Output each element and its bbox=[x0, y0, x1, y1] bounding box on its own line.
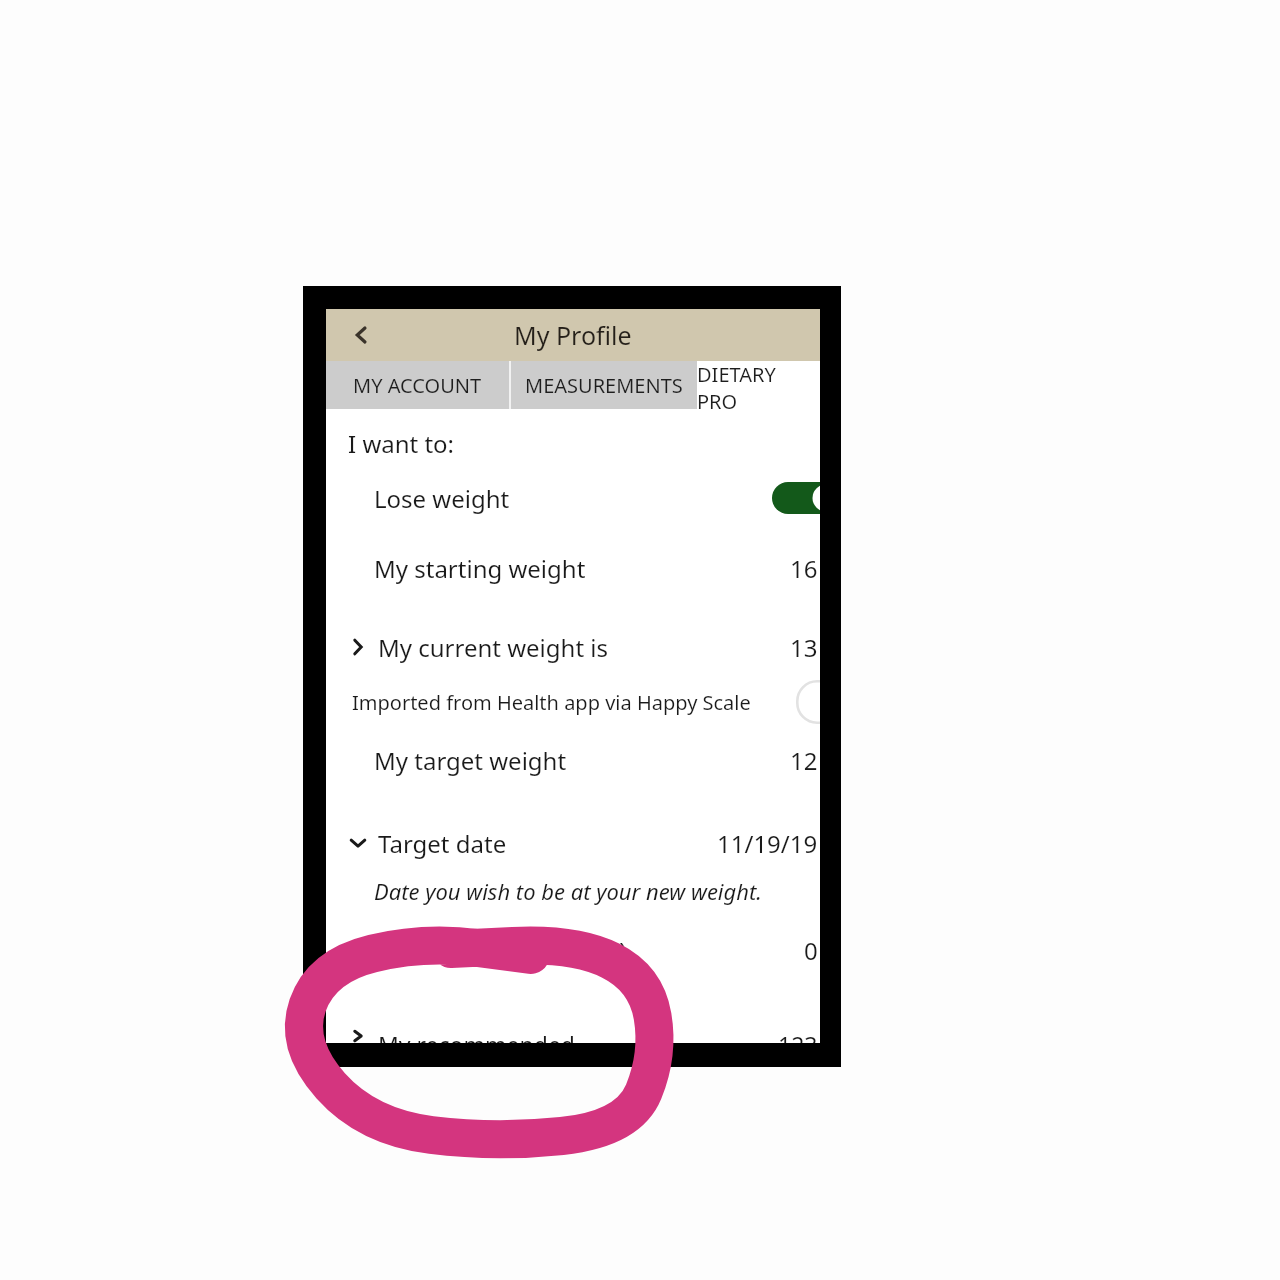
button[interactable]: Weekly weight loss(lb) bbox=[326, 923, 820, 977]
button[interactable]: MEASUREMENTS bbox=[511, 361, 697, 409]
button[interactable]: DIETARY PRO bbox=[697, 361, 820, 409]
button[interactable]: Back bbox=[326, 309, 396, 361]
button[interactable]: My starting weight bbox=[326, 533, 820, 603]
button[interactable]: My current weight is bbox=[326, 617, 820, 677]
staticText: 16 bbox=[790, 552, 818, 585]
staticText: Date you wish to be at your new weight. bbox=[374, 876, 762, 906]
staticText: My recommended bbox=[378, 1029, 575, 1043]
button[interactable]: My recommended bbox=[326, 1029, 820, 1043]
staticText: DIETARY PRO bbox=[697, 361, 820, 409]
button[interactable]: Lose weight bbox=[326, 463, 820, 533]
staticText: My starting weight bbox=[374, 552, 586, 585]
staticText: Weekly weight loss(lb) bbox=[378, 934, 627, 967]
staticText: I want to: bbox=[348, 427, 455, 460]
staticText: MY ACCOUNT bbox=[353, 372, 482, 399]
button[interactable]: Target date bbox=[326, 817, 820, 869]
button[interactable]: My target weight bbox=[326, 727, 820, 793]
staticText: My current weight is bbox=[378, 631, 608, 664]
staticText: Lose weight bbox=[374, 482, 510, 515]
staticText: 123 bbox=[778, 1029, 818, 1043]
staticText: 12 bbox=[790, 744, 818, 777]
staticText: 0 bbox=[804, 934, 818, 967]
button[interactable]: MY ACCOUNT bbox=[326, 361, 509, 409]
staticText: Target date bbox=[378, 827, 507, 860]
staticText: 13 bbox=[790, 631, 818, 664]
staticText: 11/19/19 bbox=[717, 827, 818, 860]
staticText: My target weight bbox=[374, 744, 567, 777]
staticText: MEASUREMENTS bbox=[525, 372, 683, 399]
staticText: Imported from Health app via Happy Scale bbox=[352, 689, 751, 716]
staticText: My Profile bbox=[514, 318, 632, 352]
